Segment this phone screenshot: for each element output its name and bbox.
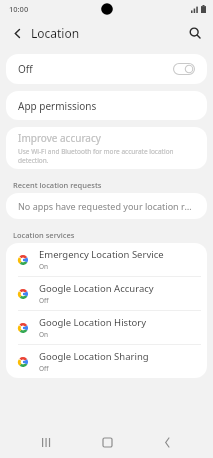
staticText: Recent location requests — [13, 180, 102, 190]
button[interactable]: Recents — [31, 427, 61, 457]
button[interactable]: App permissions — [6, 91, 207, 120]
staticText: Use Wi-Fi and Bluetooth for more accurat… — [18, 147, 195, 165]
button[interactable]: Emergency Location Service — [6, 243, 207, 276]
staticText: Off — [39, 364, 49, 373]
button[interactable]: Back — [4, 20, 30, 46]
staticText: On — [39, 262, 49, 271]
staticText: Location services — [13, 230, 75, 240]
button[interactable]: Off — [6, 54, 207, 84]
staticText: Off — [18, 62, 33, 76]
button[interactable]: Home — [92, 427, 122, 457]
button[interactable]: Google Location Accuracy — [6, 277, 207, 310]
staticText: Google Location Sharing — [39, 350, 149, 363]
staticText: 10:00 — [9, 4, 29, 14]
button[interactable]: Improve accuracy — [6, 127, 207, 169]
button[interactable]: Google Location Sharing — [6, 345, 207, 378]
staticText: Improve accuracy — [18, 131, 101, 145]
staticText: No apps have requested your location rec… — [18, 200, 195, 212]
staticText: Location — [31, 25, 80, 41]
staticText: Google Location History — [39, 316, 147, 329]
staticText: Emergency Location Service — [39, 248, 164, 261]
staticText: On — [39, 330, 49, 339]
staticText: Off — [39, 296, 49, 305]
staticText: Google Location Accuracy — [39, 282, 154, 295]
button[interactable]: No apps have requested your location rec… — [6, 193, 207, 219]
button[interactable]: Back — [152, 427, 182, 457]
staticText: App permissions — [18, 99, 97, 113]
button[interactable]: Search — [182, 20, 208, 46]
button[interactable]: Google Location History — [6, 311, 207, 344]
